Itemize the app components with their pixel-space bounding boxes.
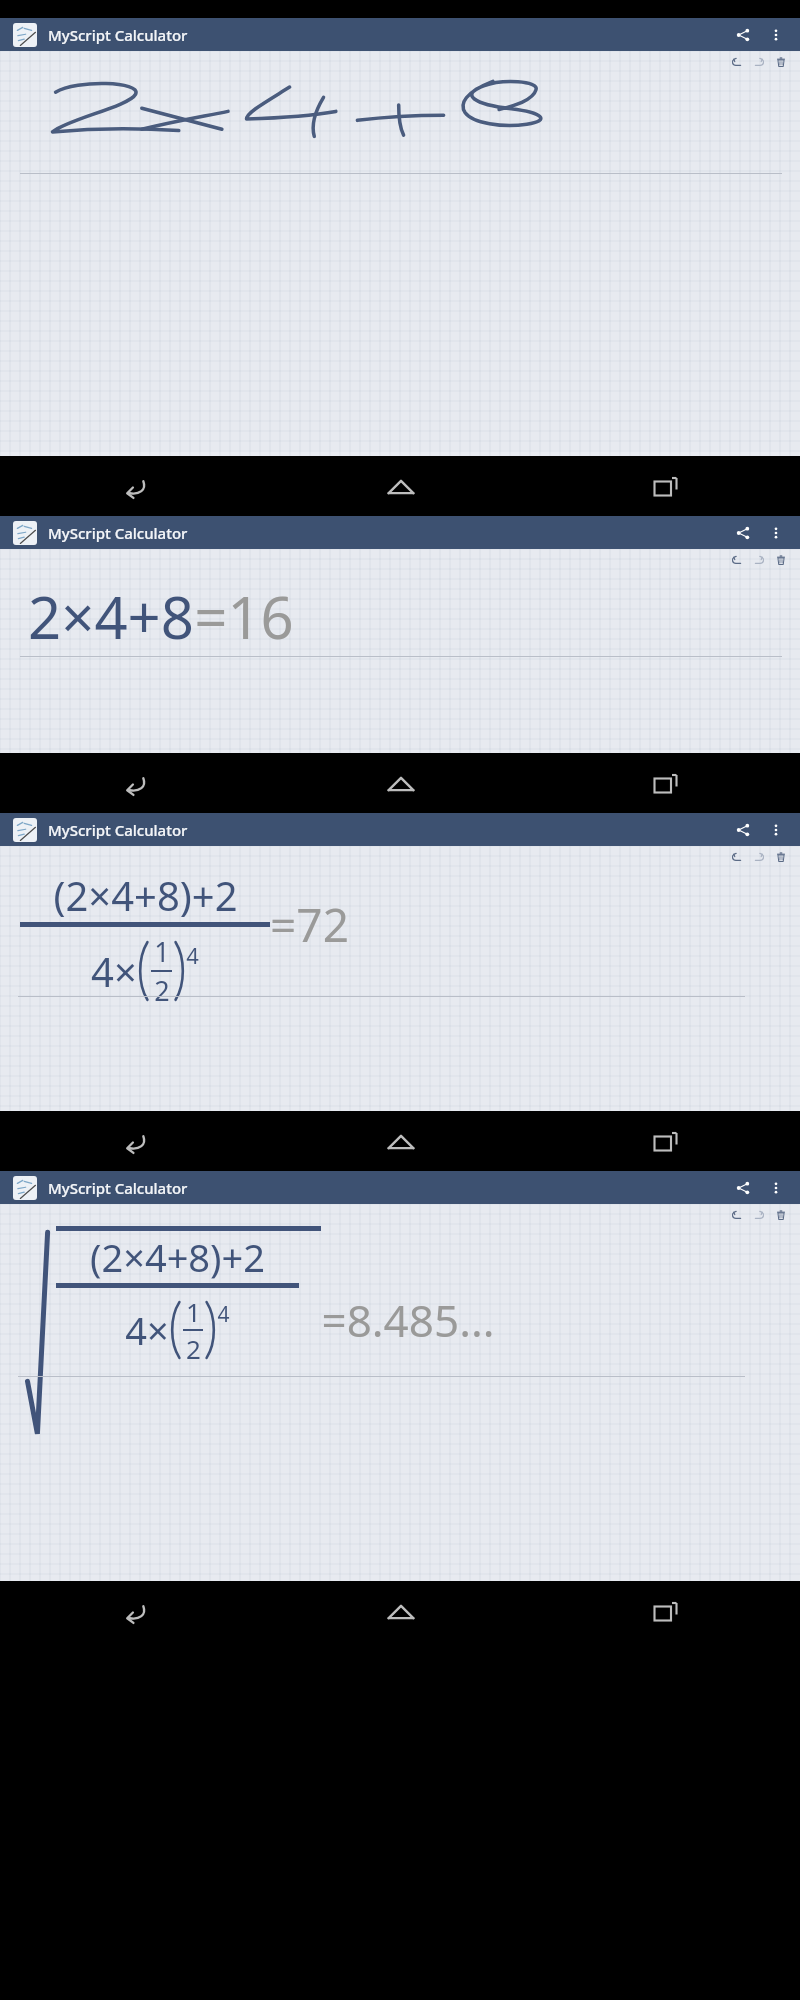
staticText: =72 [270, 893, 349, 956]
button[interactable]: Redo [748, 51, 770, 73]
button[interactable]: Back [110, 1117, 159, 1166]
staticText: MyScript Calculator [48, 523, 188, 543]
button[interactable]: Undo [726, 846, 748, 868]
staticText: =16 [194, 577, 294, 656]
button[interactable]: Back [110, 462, 159, 511]
staticText: MyScript Calculator [48, 820, 188, 840]
button[interactable]: Home [376, 759, 425, 808]
button[interactable]: Share [726, 813, 759, 846]
button[interactable]: Back [110, 759, 159, 808]
button[interactable]: Undo [726, 1204, 748, 1226]
button[interactable]: Share [726, 1171, 759, 1204]
button[interactable]: More options [759, 1171, 792, 1204]
button[interactable]: Clear [770, 1204, 792, 1226]
button[interactable]: Recent apps [641, 1117, 690, 1166]
button[interactable]: Undo [726, 51, 748, 73]
staticText: 4 [186, 940, 199, 970]
button[interactable]: Redo [748, 1204, 770, 1226]
button[interactable]: Clear [770, 549, 792, 571]
staticText: 2×4+8 [28, 577, 194, 656]
button[interactable]: Undo [726, 549, 748, 571]
staticText: MyScript Calculator [48, 1178, 188, 1198]
button[interactable]: Home [376, 462, 425, 511]
button[interactable]: Clear [770, 846, 792, 868]
button[interactable]: Back [110, 1587, 159, 1636]
button[interactable]: Redo [748, 549, 770, 571]
button[interactable]: More options [759, 813, 792, 846]
button[interactable]: Clear [770, 51, 792, 73]
staticText: 2 [154, 972, 170, 1009]
staticText: =8.485... [321, 1290, 495, 1350]
staticText: 2 [186, 1331, 201, 1366]
button[interactable]: Recent apps [641, 462, 690, 511]
button[interactable]: Home [376, 1117, 425, 1166]
staticText: 1 [154, 933, 170, 970]
staticText: 4× [91, 944, 137, 998]
staticText: (2×4+8)+2 [90, 1231, 265, 1283]
staticText: 1 [186, 1294, 201, 1329]
button[interactable]: Home [376, 1587, 425, 1636]
button[interactable]: More options [759, 516, 792, 549]
button[interactable]: Share [726, 18, 759, 51]
button[interactable]: Recent apps [641, 1587, 690, 1636]
button[interactable]: Redo [748, 846, 770, 868]
button[interactable]: More options [759, 18, 792, 51]
staticText: (2×4+8)+2 [53, 868, 238, 922]
button[interactable]: Recent apps [641, 759, 690, 808]
button[interactable]: Share [726, 516, 759, 549]
staticText: 4 [217, 1300, 230, 1329]
staticText: MyScript Calculator [48, 25, 188, 45]
staticText: 4× [125, 1304, 169, 1356]
